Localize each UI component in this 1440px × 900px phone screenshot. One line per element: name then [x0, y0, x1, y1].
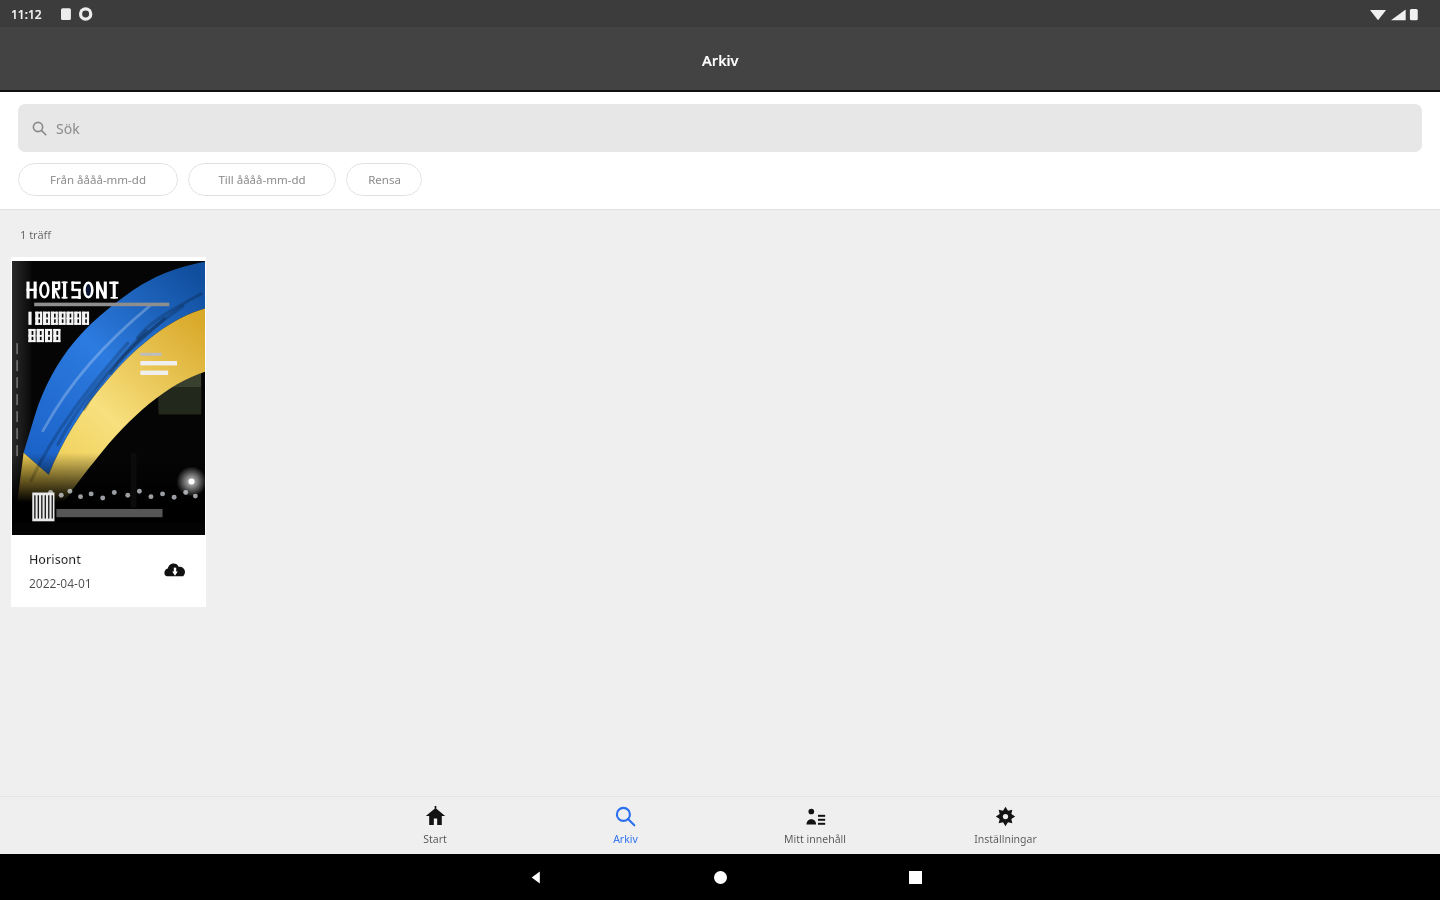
staticText: 11:12 — [11, 6, 42, 22]
staticText: Inställningar — [974, 832, 1037, 846]
staticText: Till åååå-mm-dd — [218, 172, 306, 188]
button[interactable]: Home — [707, 864, 733, 890]
button[interactable]: Arkiv — [530, 797, 720, 854]
staticText: Arkiv — [613, 832, 638, 846]
button[interactable]: Back — [523, 864, 549, 890]
staticText: Arkiv — [702, 50, 739, 70]
staticText: 2022-04-01 — [29, 575, 92, 591]
button[interactable]: Start — [340, 797, 530, 854]
button[interactable]: Sök — [18, 104, 1422, 152]
staticText: Från åååå-mm-dd — [50, 172, 146, 188]
staticText: Start — [423, 832, 447, 846]
staticText: Sök — [56, 119, 80, 138]
button[interactable]: Ladda ner — [158, 554, 192, 588]
button[interactable]: Till åååå-mm-dd — [188, 163, 336, 196]
button[interactable]: Inställningar — [910, 797, 1100, 854]
button[interactable]: Horisont — [11, 257, 206, 607]
staticText: Horisont — [29, 551, 81, 568]
button[interactable]: Från åååå-mm-dd — [18, 163, 178, 196]
button[interactable]: Mitt innehåll — [720, 797, 910, 854]
staticText: Mitt innehåll — [784, 832, 846, 846]
button[interactable]: Rensa — [346, 163, 422, 196]
staticText: 1 träff — [20, 227, 52, 242]
button[interactable]: Recents — [902, 864, 928, 890]
staticText: Rensa — [368, 172, 401, 188]
